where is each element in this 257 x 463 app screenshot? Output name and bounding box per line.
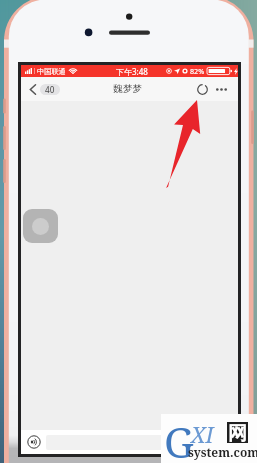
- button[interactable]: Message input: [46, 435, 233, 450]
- button[interactable]: Contact avatar: [23, 209, 58, 243]
- staticText: XI: [191, 419, 214, 449]
- staticText: 40: [45, 84, 55, 95]
- staticText: 中国联通: [37, 67, 66, 76]
- button[interactable]: Syncing: [195, 82, 209, 96]
- staticText: G: [164, 413, 194, 462]
- staticText: 魏梦梦: [113, 83, 142, 95]
- button[interactable]: More options: [214, 82, 228, 96]
- button[interactable]: Voice message: [26, 434, 42, 450]
- staticText: system.com: [188, 444, 257, 460]
- staticText: 网: [228, 422, 247, 443]
- staticText: 82%: [190, 66, 205, 76]
- button[interactable]: Back, 40 unread: [30, 84, 60, 95]
- staticText: 下午3:48: [116, 66, 148, 77]
